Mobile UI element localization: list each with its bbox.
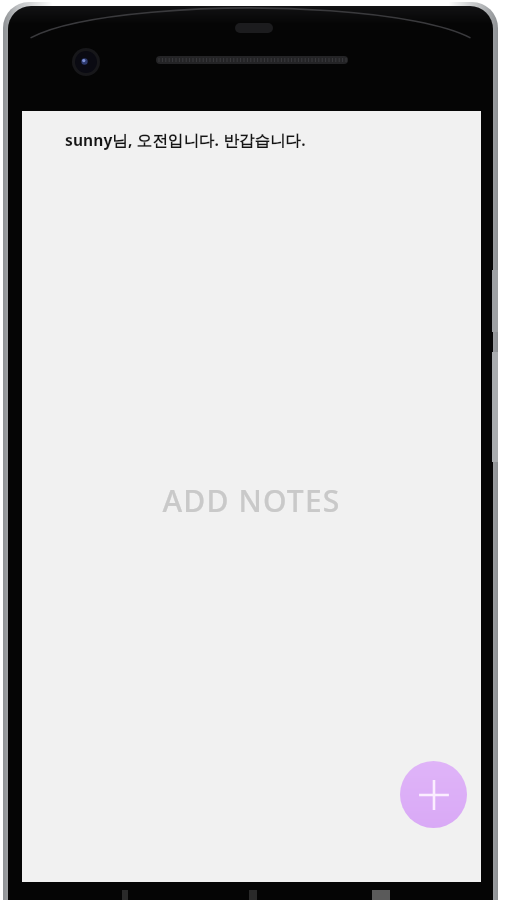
button[interactable]: Back — [110, 890, 140, 900]
button[interactable]: Add note — [400, 761, 467, 828]
button[interactable]: Home — [238, 890, 268, 900]
button[interactable]: Recent apps — [366, 890, 396, 900]
staticText: ADD NOTES — [22, 480, 481, 520]
staticText: sunny님, 오전입니다. 반갑습니다. — [65, 129, 306, 150]
